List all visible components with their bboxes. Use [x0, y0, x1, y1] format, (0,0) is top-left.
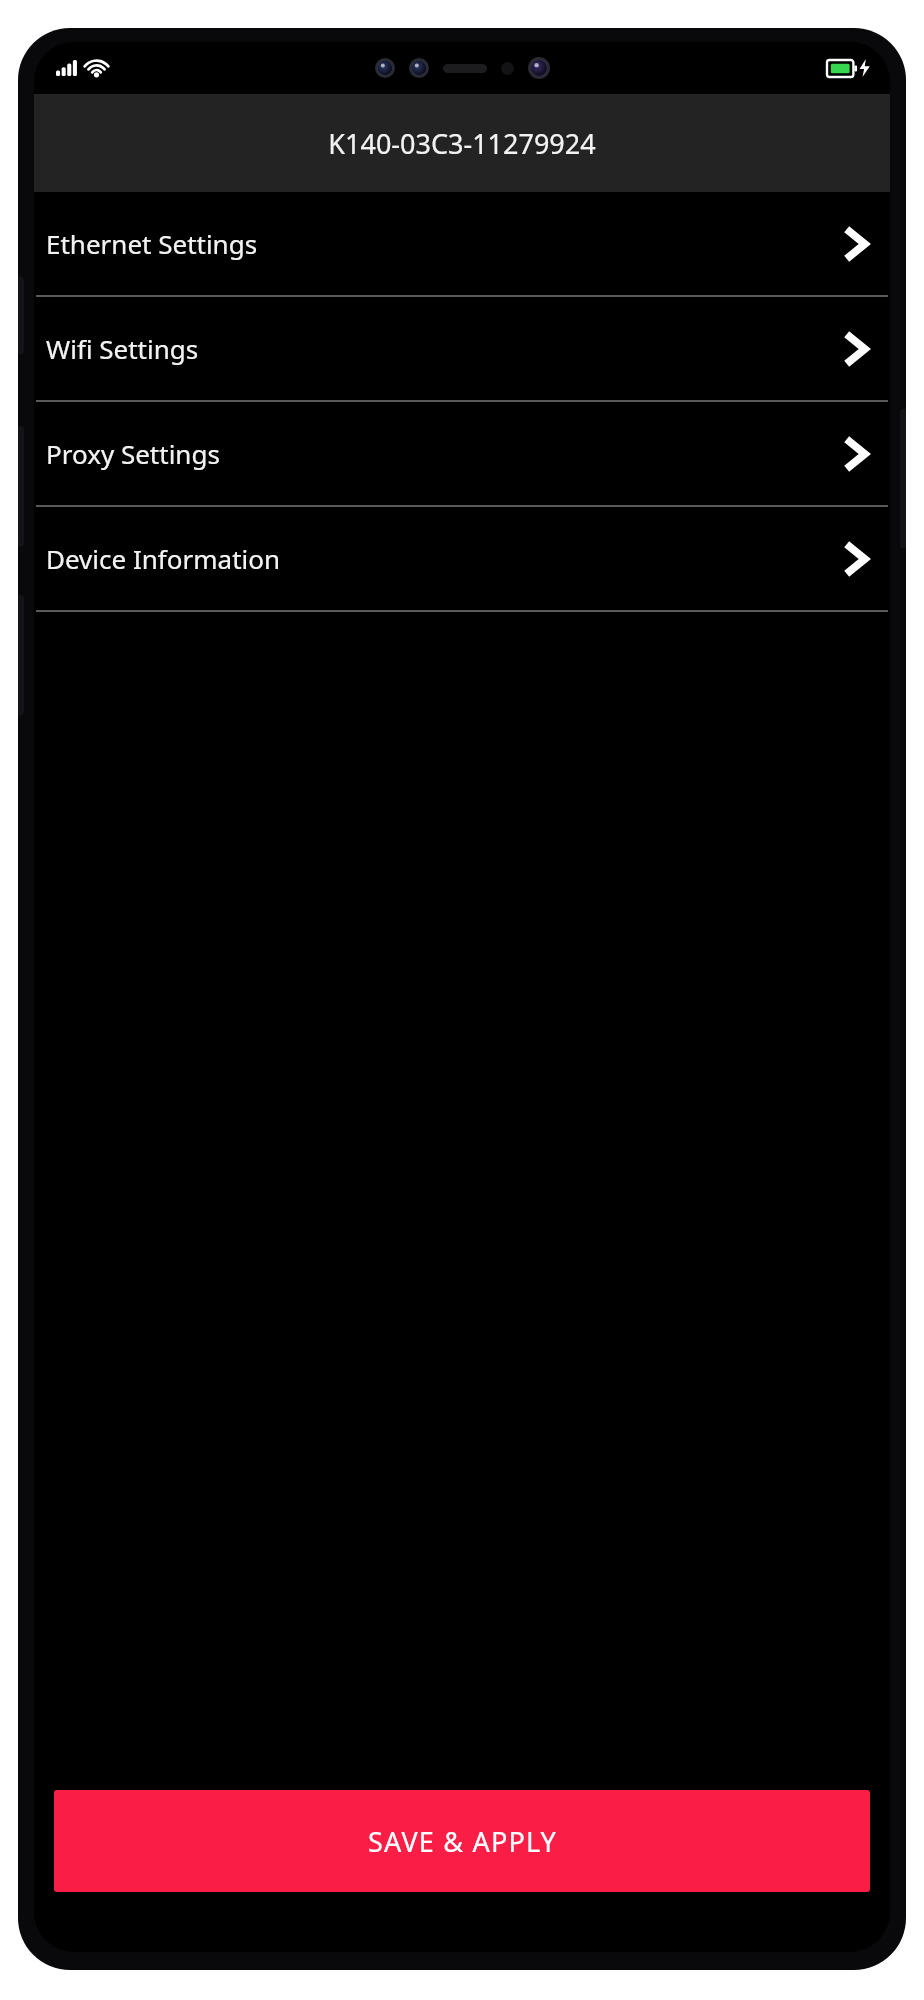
- button[interactable]: Proxy Settings: [34, 402, 890, 505]
- staticText: Device Information: [46, 541, 844, 576]
- staticText: SAVE & APPLY: [368, 1823, 557, 1860]
- button[interactable]: Ethernet Settings: [34, 192, 890, 295]
- staticText: Proxy Settings: [46, 436, 844, 471]
- staticText: K140-03C3-11279924: [328, 125, 596, 162]
- staticText: Ethernet Settings: [46, 226, 844, 261]
- button[interactable]: Wifi Settings: [34, 297, 890, 400]
- button[interactable]: SAVE & APPLY: [54, 1790, 870, 1892]
- staticText: Wifi Settings: [46, 331, 844, 366]
- button[interactable]: Device Information: [34, 507, 890, 610]
